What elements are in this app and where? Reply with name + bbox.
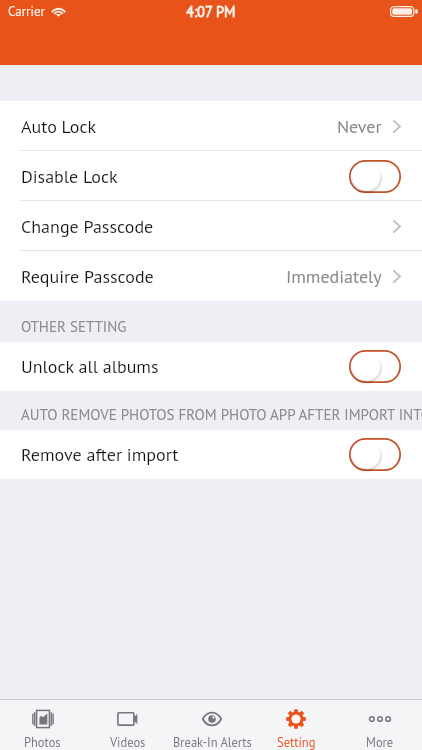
staticText: Setting (277, 734, 316, 750)
button[interactable]: More (338, 700, 422, 750)
button[interactable]: Auto Lock (0, 101, 422, 151)
staticText: Videos (110, 734, 146, 750)
button[interactable]: Toggle (349, 350, 401, 383)
button[interactable]: Unlock all albums (0, 342, 422, 391)
staticText: 4:07 PM (186, 2, 236, 21)
button[interactable]: Remove after import (0, 430, 422, 479)
button[interactable]: Toggle (349, 438, 401, 471)
staticText: Change Passcode (21, 215, 154, 238)
button[interactable]: Toggle (349, 160, 401, 193)
button[interactable]: Photos (0, 700, 85, 750)
staticText: Photos (24, 734, 61, 750)
staticText: Require Passcode (21, 265, 154, 288)
staticText: More (366, 734, 394, 750)
staticText: Remove after import (21, 443, 179, 466)
staticText: Auto Lock (21, 115, 97, 138)
staticText: Carrier (8, 3, 45, 20)
button[interactable]: Change Passcode (0, 201, 422, 251)
button[interactable]: Break-In Alerts (170, 700, 254, 750)
staticText: Never (337, 115, 382, 138)
staticText: Immediately (286, 265, 382, 288)
button[interactable]: Videos (85, 700, 170, 750)
button[interactable]: Disable Lock (0, 151, 422, 201)
staticText: Disable Lock (21, 165, 118, 188)
staticText: Unlock all albums (21, 355, 159, 378)
staticText: Break-In Alerts (173, 734, 252, 750)
staticText: AUTO REMOVE PHOTOS FROM PHOTO APP AFTER … (21, 405, 422, 424)
staticText: OTHER SETTING (21, 317, 127, 336)
button[interactable]: Require Passcode (0, 251, 422, 301)
button[interactable]: Setting (254, 700, 338, 750)
